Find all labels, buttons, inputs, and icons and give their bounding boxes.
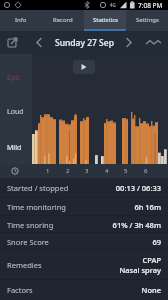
staticText: Factors [7, 285, 33, 295]
staticText: Settings [136, 16, 159, 24]
staticText: 69 [152, 237, 161, 247]
staticText: 5 [124, 167, 128, 175]
staticText: Mild [7, 143, 22, 153]
staticText: Loud [7, 107, 24, 117]
staticText: 6 [144, 167, 148, 175]
button[interactable]: Snore Score [0, 233, 168, 250]
staticText: CPAP Nasal spray [119, 255, 161, 275]
button[interactable]: Remedies [0, 250, 168, 280]
button[interactable]: Started / stopped [0, 178, 168, 198]
staticText: Record [53, 16, 73, 24]
button[interactable]: Settings [126, 10, 168, 29]
staticText: 7:08 PM [138, 1, 163, 10]
staticText: Started / stopped [7, 183, 69, 193]
staticText: Time monitoring [7, 202, 66, 212]
staticText: Sunday 27 Sep [55, 37, 114, 49]
staticText: 00:13 / 06:33 [115, 183, 161, 193]
button[interactable]: Factors [0, 280, 168, 299]
staticText: Remedies [7, 260, 42, 270]
staticText: 2 [66, 167, 70, 175]
staticText: Snore Score [7, 237, 49, 247]
staticText: 61% / 3h 48m [112, 220, 161, 230]
staticText: Time snoring [7, 220, 54, 230]
button[interactable]: Record [42, 10, 84, 29]
staticText: 3 [85, 167, 89, 175]
button[interactable]: Info [0, 10, 42, 29]
button[interactable]: Statistics [84, 10, 126, 29]
button[interactable]: Sunday 27 Sep [0, 31, 168, 54]
button[interactable]: Time monitoring [0, 198, 168, 216]
staticText: 6h 16m [134, 202, 161, 212]
staticText: None [141, 285, 161, 295]
staticText: 4 [105, 167, 109, 175]
staticText: Info [15, 16, 27, 24]
staticText: Statistics [93, 16, 118, 24]
staticText: 4G [110, 2, 116, 8]
staticText: 1 [46, 167, 50, 175]
button[interactable]: Time snoring [0, 216, 168, 233]
staticText: Epic [7, 73, 21, 83]
button[interactable] [73, 60, 95, 74]
